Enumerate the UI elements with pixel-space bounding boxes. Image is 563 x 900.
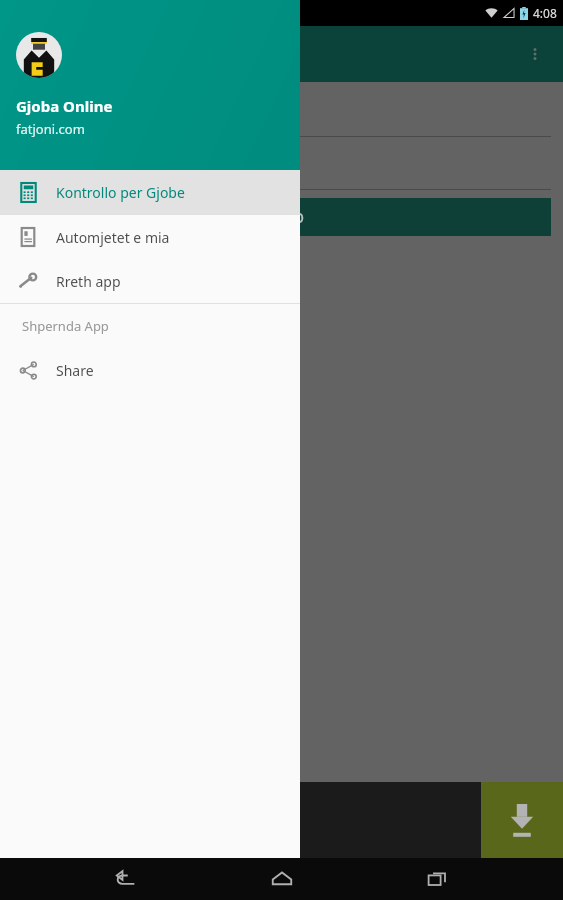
staticText: Rreth app	[56, 272, 121, 291]
button[interactable]: Recents	[408, 858, 466, 900]
button[interactable]: More options	[515, 34, 555, 74]
staticText: Kontrollo per Gjobe	[56, 183, 185, 202]
button[interactable]: Kontrollo per Gjobe	[0, 170, 300, 214]
staticText: 4:08	[533, 5, 557, 21]
button[interactable]: Antivirus Boost	[0, 782, 481, 858]
button[interactable]: Home	[253, 858, 311, 900]
button[interactable]: Rreth app	[0, 259, 300, 303]
staticText: Share	[56, 361, 94, 380]
staticText: Automjetet e mia	[56, 228, 170, 247]
button[interactable]: KERKO	[12, 198, 551, 236]
staticText: Gjoba Online	[16, 96, 113, 116]
button[interactable]: Install	[481, 782, 563, 858]
button[interactable]: Automjetet e mia	[0, 215, 300, 259]
button[interactable]: Share	[0, 348, 300, 392]
staticText: KERKO	[259, 208, 305, 227]
staticText: Shpernda App	[22, 317, 109, 335]
staticText: fatjoni.com	[16, 120, 85, 138]
button[interactable]: Back	[97, 858, 155, 900]
